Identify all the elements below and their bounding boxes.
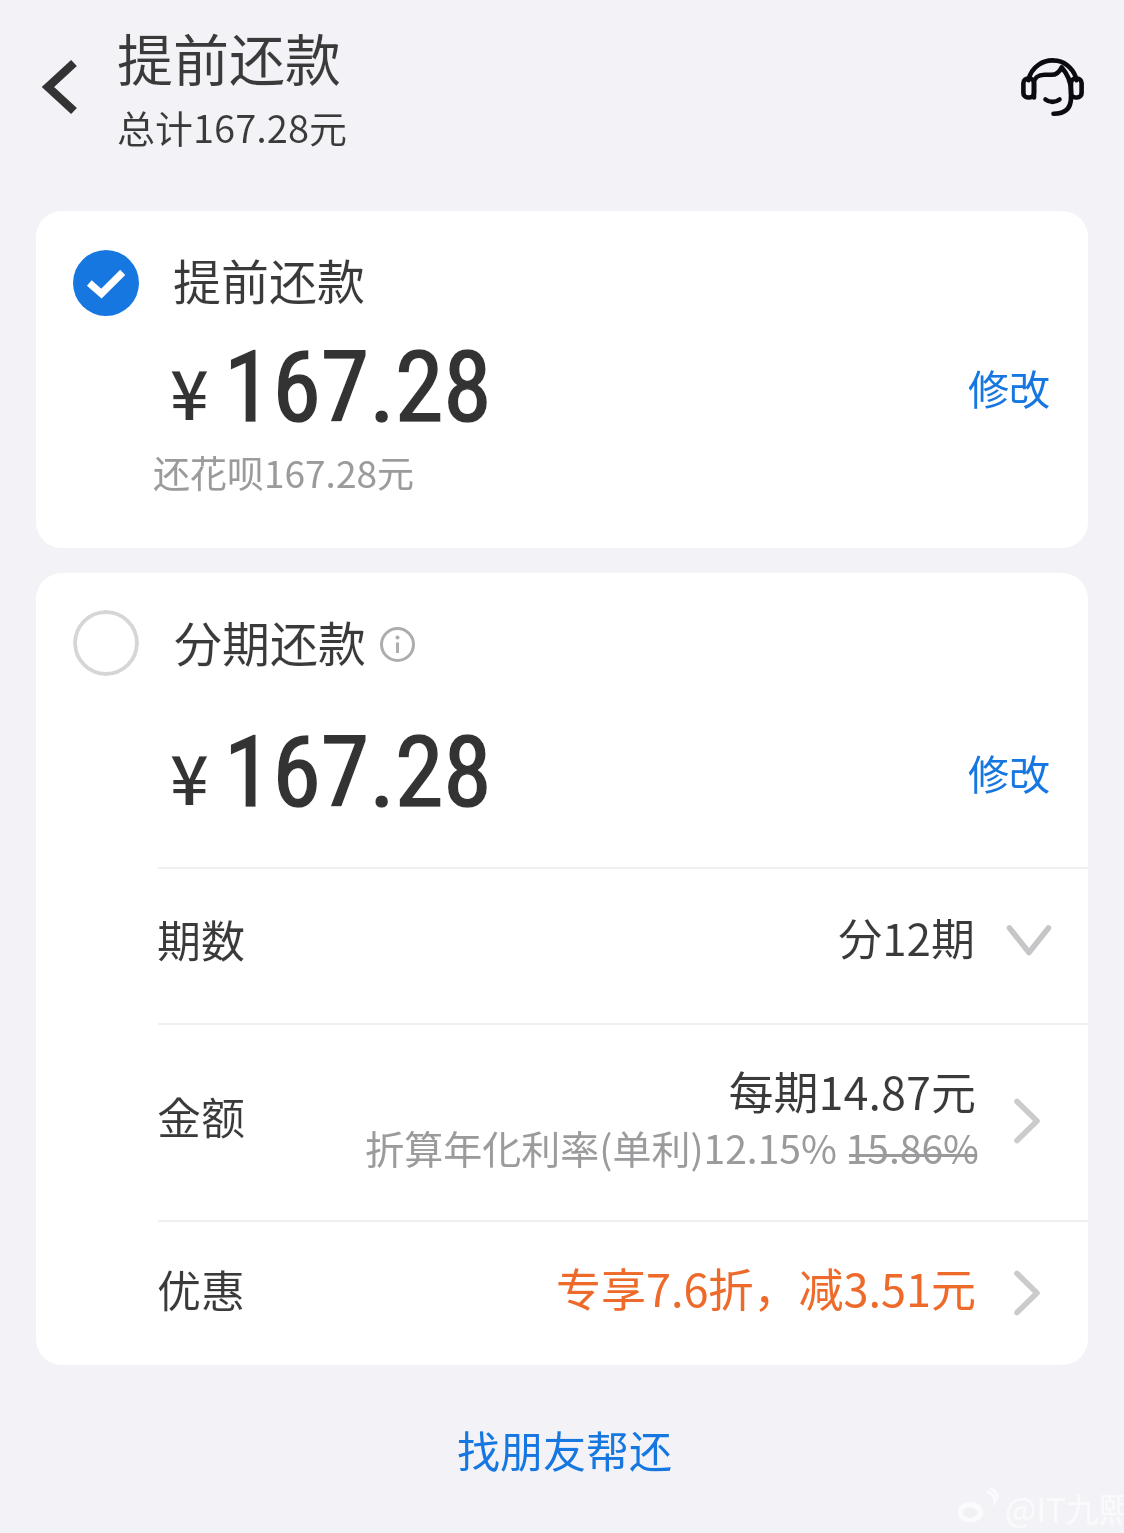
staticText: 还花呗167.28元 (153, 445, 414, 499)
staticText: 提前还款 (173, 244, 366, 314)
staticText: 找朋友帮还 (457, 1418, 672, 1480)
staticText: 167.28 (224, 715, 492, 830)
staticText: 167.28 (224, 330, 492, 445)
staticText: 修改 (968, 357, 1050, 416)
button[interactable]: 修改 (954, 732, 1064, 811)
button[interactable]: 修改 (954, 347, 1064, 426)
button[interactable]: 金额 (36, 1023, 1088, 1220)
staticText: ¥ (170, 726, 209, 824)
button[interactable]: 期数 (36, 867, 1088, 1023)
staticText: 折算年化利率(单利)12.15% 15.86% (36, 1119, 979, 1175)
staticText: 分12期 (36, 905, 975, 969)
button[interactable]: 优惠 (36, 1220, 1088, 1365)
staticText: 分期还款 (174, 606, 367, 676)
staticText: 提前还款 (117, 16, 341, 97)
button[interactable]: Pay in full, selected (36, 211, 1088, 548)
staticText: 每期14.87元 (36, 1058, 976, 1123)
staticText: ¥ (170, 341, 209, 439)
button[interactable]: Customer service (1021, 58, 1084, 117)
button[interactable]: 分期还款 (36, 605, 1088, 677)
button[interactable]: Pay in full, selected (73, 250, 139, 316)
button[interactable]: 找朋友帮还 (437, 1408, 692, 1490)
button[interactable]: Back (16, 32, 102, 118)
staticText: 总计167.28元 (117, 99, 348, 154)
staticText: 修改 (968, 742, 1050, 801)
staticText: 167.28 (224, 330, 492, 445)
staticText: 期数 (157, 907, 245, 971)
staticText: 优惠 (157, 1257, 245, 1321)
button[interactable]: Pay in instalments, not selected (73, 610, 139, 676)
staticText: 金额 (157, 1084, 245, 1148)
staticText: 专享7.6折，减3.51元 (36, 1255, 976, 1320)
staticText: 167.28 (224, 715, 492, 830)
